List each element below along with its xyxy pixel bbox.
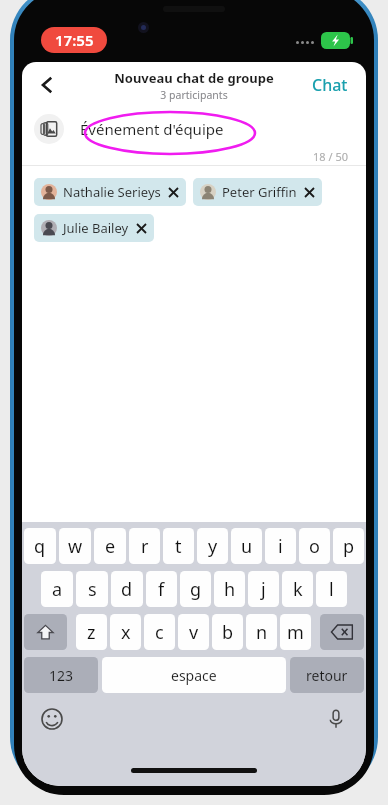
button[interactable]: Add photo	[34, 114, 64, 144]
button[interactable]: f	[146, 571, 177, 607]
button[interactable]: Backspace	[320, 614, 364, 650]
staticText: i	[278, 534, 283, 559]
button[interactable]: p	[333, 528, 364, 564]
staticText: w	[68, 534, 83, 559]
button[interactable]: c	[144, 614, 175, 650]
staticText: Julie Bailey	[63, 219, 129, 237]
button[interactable]: o	[299, 528, 330, 564]
staticText: m	[287, 620, 304, 645]
staticText: retour	[306, 666, 348, 685]
button[interactable]: k	[282, 571, 313, 607]
staticText: a	[52, 577, 63, 602]
button[interactable]: l	[316, 571, 347, 607]
staticText: l	[329, 577, 334, 602]
button[interactable]: Julie Bailey	[34, 214, 154, 242]
staticText: p	[343, 534, 355, 559]
button[interactable]: Événement d'équipe	[80, 119, 366, 139]
other: Remove Peter Griffin	[304, 187, 315, 198]
staticText: f	[158, 577, 165, 602]
button[interactable]: e	[94, 528, 126, 564]
button[interactable]: y	[197, 528, 228, 564]
button[interactable]: x	[110, 614, 141, 650]
button[interactable]: Emoji	[38, 705, 66, 733]
staticText: c	[155, 620, 164, 645]
button[interactable]: Nathalie Serieys	[34, 178, 186, 206]
staticText: 18 / 50	[313, 149, 348, 164]
staticText: q	[34, 534, 46, 559]
button[interactable]: Peter Griffin	[193, 178, 322, 206]
staticText: 123	[49, 666, 74, 685]
button[interactable]: i	[265, 528, 296, 564]
button[interactable]: Dictation	[322, 705, 350, 733]
staticText: r	[141, 534, 149, 559]
button[interactable]: h	[214, 571, 245, 607]
staticText: s	[88, 577, 97, 602]
staticText: Chat	[312, 74, 348, 96]
staticText: g	[190, 577, 202, 602]
button[interactable]: b	[212, 614, 243, 650]
staticText: 3 participants	[160, 88, 228, 102]
button[interactable]: Chat	[308, 70, 352, 100]
button[interactable]: t	[163, 528, 194, 564]
button[interactable]: u	[231, 528, 262, 564]
button[interactable]: retour	[290, 657, 364, 693]
staticText: z	[87, 620, 96, 645]
staticText: y	[208, 534, 218, 559]
button[interactable]: z	[76, 614, 107, 650]
other: Remove Julie Bailey	[136, 223, 147, 234]
staticText: n	[256, 620, 268, 645]
button[interactable]: Shift	[24, 614, 67, 650]
staticText: Nouveau chat de groupe	[114, 69, 274, 87]
button[interactable]: a	[41, 571, 73, 607]
button[interactable]: n	[246, 614, 277, 650]
button[interactable]: d	[111, 571, 143, 607]
button[interactable]: m	[280, 614, 311, 650]
staticText: h	[224, 577, 236, 602]
staticText: espace	[171, 666, 217, 685]
button[interactable]: r	[129, 528, 160, 564]
button[interactable]: g	[180, 571, 211, 607]
button[interactable]: w	[59, 528, 91, 564]
staticText: x	[121, 620, 131, 645]
staticText: j	[261, 577, 266, 602]
staticText: t	[175, 534, 182, 559]
button[interactable]: s	[76, 571, 108, 607]
staticText: v	[189, 620, 199, 645]
staticText: Événement d'équipe	[80, 119, 224, 139]
button[interactable]: j	[248, 571, 279, 607]
staticText: o	[309, 534, 320, 559]
button[interactable]: Back	[28, 65, 68, 105]
staticText: k	[293, 577, 303, 602]
staticText: d	[121, 577, 133, 602]
staticText: Nathalie Serieys	[63, 183, 161, 201]
staticText: 17:55	[55, 30, 94, 50]
button[interactable]: q	[24, 528, 56, 564]
button[interactable]: espace	[102, 657, 286, 693]
staticText: u	[241, 534, 253, 559]
other: Remove Nathalie Serieys	[168, 187, 179, 198]
staticText: Peter Griffin	[222, 183, 297, 201]
button[interactable]: 123	[24, 657, 98, 693]
button[interactable]: v	[178, 614, 209, 650]
staticText: b	[222, 620, 234, 645]
staticText: e	[105, 534, 116, 559]
